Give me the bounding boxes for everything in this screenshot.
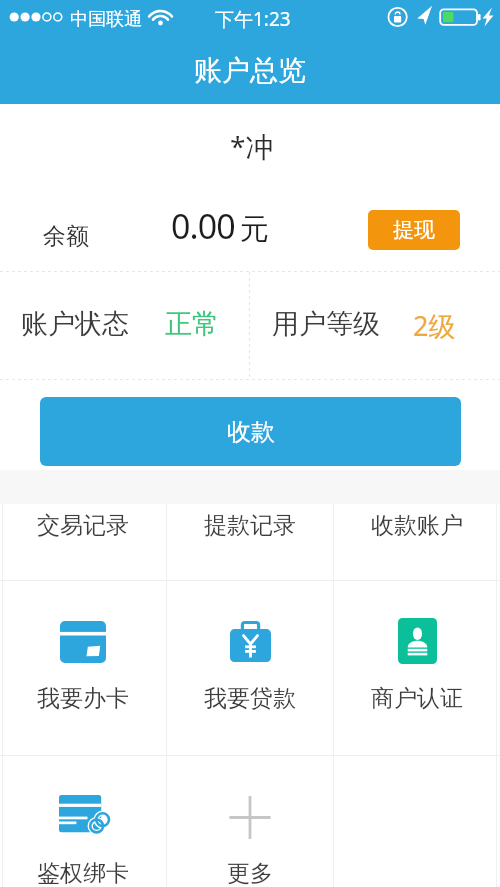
- button[interactable]: 更多: [167, 755, 333, 887]
- staticText: 提现: [393, 217, 435, 243]
- staticText: 收款账户: [371, 511, 463, 540]
- button[interactable]: 用户等级: [250, 271, 500, 379]
- staticText: 0.00: [171, 203, 235, 249]
- staticText: 用户等级: [272, 307, 380, 341]
- button[interactable]: 收款: [40, 397, 461, 466]
- staticText: 元: [240, 211, 269, 248]
- staticText: 交易记录: [37, 511, 129, 540]
- button[interactable]: 我要办卡: [0, 580, 166, 755]
- staticText: 下午1:23: [215, 6, 291, 32]
- staticText: 提款记录: [204, 511, 296, 540]
- staticText: 中国联通: [70, 8, 142, 31]
- staticText: 鉴权绑卡: [37, 859, 129, 887]
- button[interactable]: 提款记录: [167, 504, 333, 580]
- button[interactable]: 商户认证: [334, 580, 500, 755]
- staticText: 账户总览: [194, 53, 306, 88]
- staticText: *冲: [230, 127, 274, 165]
- button[interactable]: 提现: [368, 210, 460, 250]
- staticText: 2级: [413, 307, 456, 344]
- staticText: 我要办卡: [37, 684, 129, 713]
- staticText: 账户状态: [21, 307, 129, 341]
- button[interactable]: 我要贷款: [167, 580, 333, 755]
- staticText: 收款: [227, 417, 275, 447]
- staticText: 正常: [165, 307, 219, 341]
- button[interactable]: 鉴权绑卡: [0, 755, 166, 887]
- button[interactable]: 交易记录: [0, 504, 166, 580]
- staticText: 更多: [227, 859, 273, 887]
- staticText: 余额: [43, 222, 89, 251]
- button[interactable]: 收款账户: [334, 504, 500, 580]
- button[interactable]: 账户状态: [0, 271, 249, 379]
- staticText: 我要贷款: [204, 684, 296, 713]
- staticText: 商户认证: [371, 684, 463, 713]
